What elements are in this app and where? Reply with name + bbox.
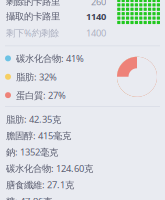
staticText: 260 — [91, 0, 106, 8]
staticText: 1400 — [86, 27, 106, 39]
staticText: 膽固醇: 415毫克 — [6, 129, 71, 142]
staticText: 剩餘的卡路里 — [6, 0, 60, 7]
staticText: 攝取的卡路里 — [6, 11, 60, 22]
staticText: 脂肪: 32% — [16, 71, 57, 83]
staticText: 糖: 47.96克 — [6, 195, 52, 200]
staticText: 碳水化合物: 41% — [16, 52, 84, 65]
staticText: 蛋白質: 27% — [16, 89, 66, 101]
staticText: 膳食纖維: 27.1克 — [6, 178, 74, 191]
staticText: 1140 — [86, 10, 106, 23]
staticText: 脂肪: 42.35克 — [6, 113, 61, 125]
staticText: 鈉: 1352毫克 — [6, 146, 58, 158]
staticText: 剩下%約剩餘 — [6, 27, 59, 39]
staticText: 碳水化合物: 124.60克 — [6, 162, 93, 174]
